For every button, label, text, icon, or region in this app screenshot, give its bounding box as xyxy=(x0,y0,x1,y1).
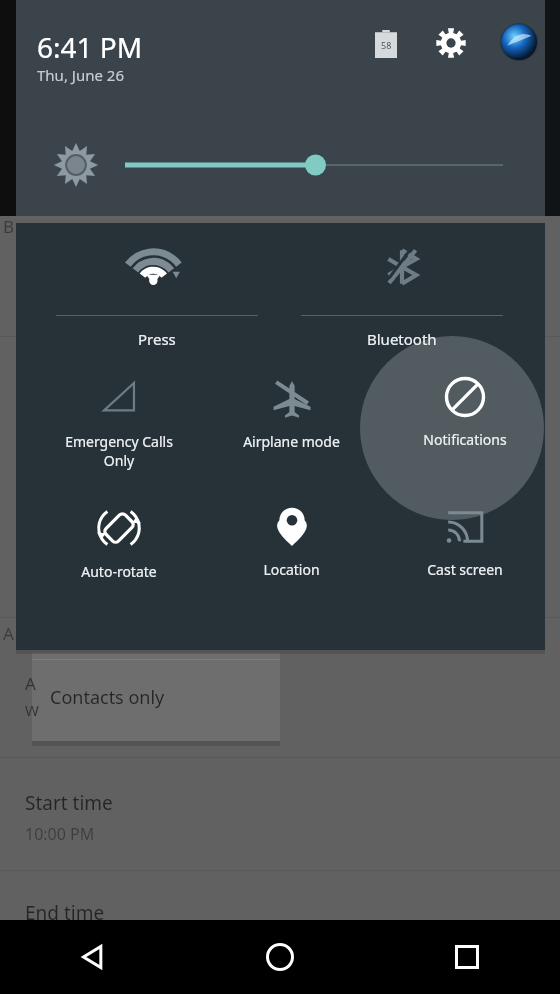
staticText: Auto-rotate xyxy=(81,562,157,581)
staticText: A xyxy=(25,672,36,695)
button[interactable]: Settings xyxy=(428,20,474,66)
staticText: 10:00 PM xyxy=(25,823,95,845)
button[interactable]: Location xyxy=(205,498,378,618)
staticText: 58 xyxy=(381,39,392,51)
staticText: Location xyxy=(263,560,320,579)
button[interactable]: Brightness xyxy=(37,126,527,202)
button[interactable]: Airplane mode xyxy=(205,368,378,488)
staticText: Thu, June 26 xyxy=(37,65,124,85)
button[interactable]: Cast screen xyxy=(378,498,551,618)
staticText: Airplane mode xyxy=(243,432,340,451)
staticText: End time xyxy=(25,900,105,926)
staticText: Start time xyxy=(25,790,113,816)
staticText: Notifications xyxy=(423,430,507,449)
staticText: Press xyxy=(138,329,176,349)
button[interactable]: Bluetooth xyxy=(299,233,505,355)
button[interactable]: Press xyxy=(54,233,260,355)
button[interactable]: Contacts only xyxy=(32,653,280,741)
staticText: Contacts only xyxy=(50,685,165,710)
button[interactable]: User profile xyxy=(497,20,541,64)
button[interactable]: Back xyxy=(0,920,186,994)
button[interactable]: Start time xyxy=(0,758,560,870)
staticText: Bluetooth xyxy=(367,329,437,349)
staticText: B xyxy=(3,215,15,238)
button[interactable]: Recent apps xyxy=(373,920,560,994)
staticText: Cast screen xyxy=(427,560,503,579)
button[interactable]: Notifications xyxy=(378,368,551,488)
staticText: Emergency Calls Only xyxy=(65,432,173,470)
button[interactable]: Emergency Calls Only xyxy=(32,368,205,488)
button[interactable]: Home xyxy=(186,920,373,994)
button[interactable]: Auto-rotate xyxy=(32,498,205,618)
staticText: 6:41 PM xyxy=(37,28,143,66)
button[interactable]: End time xyxy=(0,871,560,920)
staticText: W xyxy=(25,700,39,720)
button[interactable]: Battery 58 percent xyxy=(364,22,408,66)
staticText: A xyxy=(3,622,14,645)
